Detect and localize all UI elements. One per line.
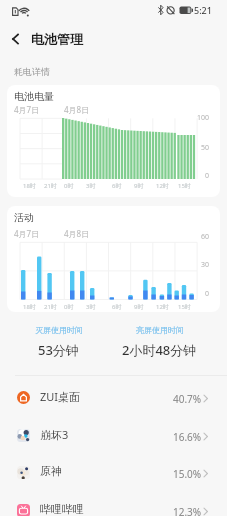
staticText: 100: [197, 113, 210, 123]
staticText: 3时: [86, 303, 96, 311]
staticText: 2小时48分钟: [122, 341, 197, 359]
button[interactable]: [3, 26, 29, 52]
staticText: 崩坏3: [40, 427, 69, 442]
button[interactable]: 灭屏使用时间: [0, 315, 117, 371]
staticText: 0: [205, 289, 210, 299]
staticText: 电池管理: [31, 31, 83, 47]
staticText: 9时: [134, 182, 144, 190]
staticText: 16.6%: [173, 430, 202, 444]
staticText: 50: [201, 143, 210, 153]
staticText: 15时: [178, 303, 191, 311]
staticText: 15时: [178, 182, 191, 190]
staticText: 30: [201, 260, 210, 270]
staticText: 18时: [23, 182, 36, 190]
staticText: 60: [201, 232, 210, 242]
staticText: 18时: [23, 303, 36, 311]
staticText: 21时: [44, 303, 57, 311]
button[interactable]: ZUI桌面: [0, 379, 227, 417]
button[interactable]: 原神: [0, 454, 227, 492]
staticText: 15.0%: [173, 467, 202, 481]
staticText: 0时: [64, 182, 74, 190]
staticText: 21时: [44, 182, 57, 190]
staticText: 12时: [156, 182, 169, 190]
staticText: 耗电详情: [14, 66, 50, 77]
staticText: 0: [205, 171, 210, 181]
staticText: 活动: [14, 211, 34, 224]
staticText: 0时: [64, 303, 74, 311]
staticText: 40.7%: [173, 392, 202, 406]
staticText: 5:21: [194, 4, 212, 16]
staticText: ZUI桌面: [40, 389, 81, 404]
staticText: 4月7日: [14, 228, 40, 239]
staticText: 哔哩哔哩: [40, 502, 84, 516]
staticText: 4月8日: [64, 228, 90, 239]
button[interactable]: 哔哩哔哩: [0, 492, 227, 516]
staticText: 4月8日: [64, 104, 90, 115]
staticText: 原神: [40, 464, 62, 478]
staticText: 电池电量: [14, 90, 54, 103]
staticText: 灭屏使用时间: [35, 325, 83, 335]
staticText: 亮屏使用时间: [136, 325, 184, 335]
staticText: 9时: [134, 303, 144, 311]
staticText: 53分钟: [38, 341, 79, 359]
staticText: 6时: [112, 303, 122, 311]
staticText: 12时: [156, 303, 169, 311]
button[interactable]: 亮屏使用时间: [102, 315, 217, 371]
staticText: 12.3%: [173, 505, 202, 516]
staticText: 4月7日: [14, 104, 40, 115]
staticText: 3时: [86, 182, 96, 190]
staticText: 6时: [112, 182, 122, 190]
button[interactable]: 崩坏3: [0, 417, 227, 455]
